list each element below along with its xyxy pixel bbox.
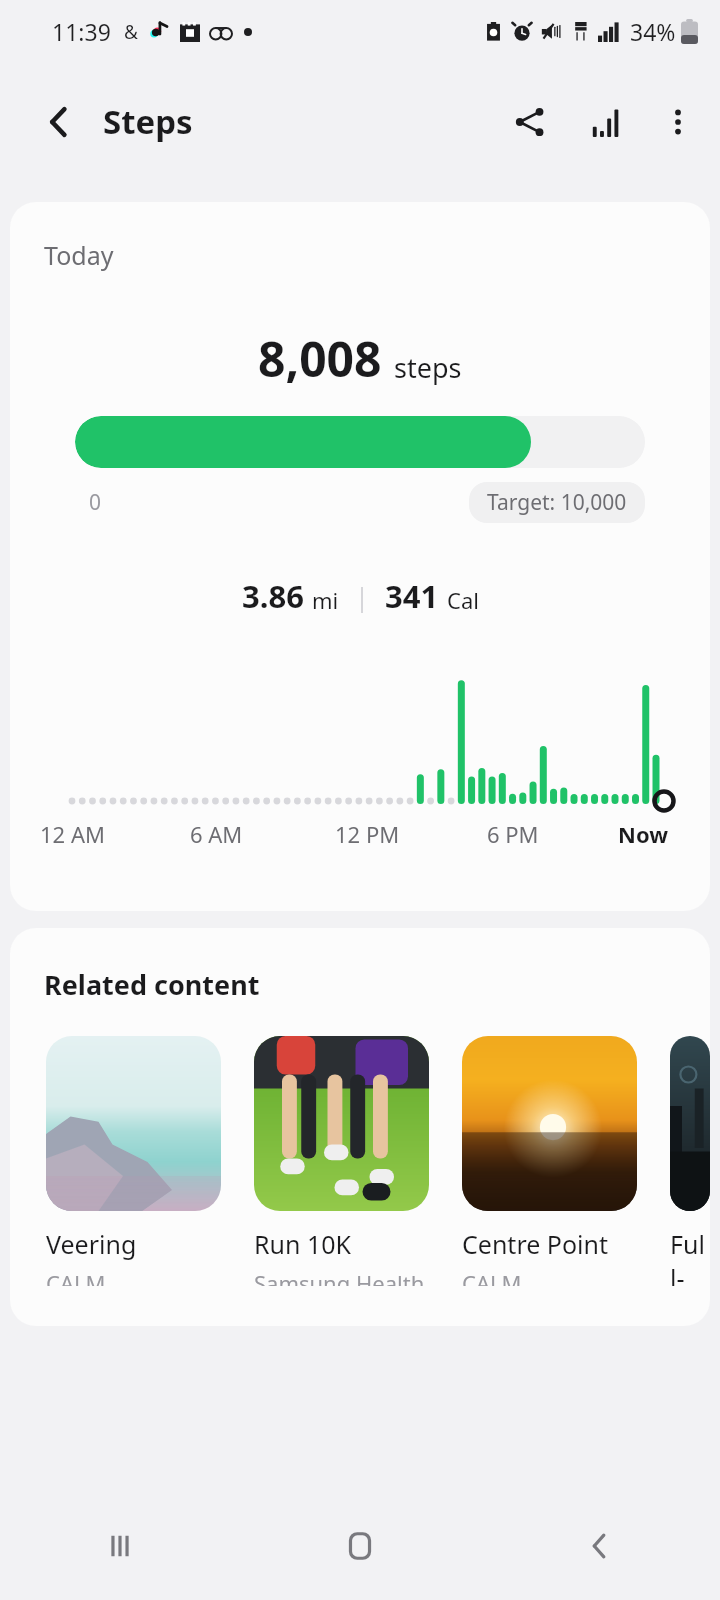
button[interactable]: History chart — [574, 90, 638, 154]
staticText: 8,008 — [258, 326, 382, 391]
staticText: Samsung Health — [254, 1268, 425, 1286]
staticText: Related content — [44, 966, 260, 1003]
staticText: 12 PM — [335, 819, 400, 849]
staticText: 11:39 — [52, 16, 111, 47]
staticText: Veering — [46, 1227, 137, 1261]
staticText: Full- Burn — [670, 1227, 710, 1286]
button[interactable]: More options — [646, 90, 710, 154]
staticText: 34% — [630, 16, 676, 47]
button[interactable]: Share — [498, 90, 562, 154]
button[interactable]: Full- Burn — [670, 1036, 710, 1286]
staticText: 3.86 — [242, 575, 304, 617]
staticText: Now — [618, 819, 669, 849]
staticText: Cal — [447, 585, 479, 615]
staticText: 0 — [89, 488, 102, 517]
staticText: Run 10K — [254, 1227, 352, 1261]
staticText: mi — [312, 585, 339, 615]
staticText: 12 AM — [40, 819, 105, 849]
button[interactable]: Centre Point — [462, 1036, 637, 1286]
staticText: & — [124, 19, 138, 45]
button[interactable]: Recent apps — [0, 1492, 240, 1600]
staticText: 6 PM — [487, 819, 539, 849]
staticText: Today — [44, 238, 114, 272]
staticText: CALM — [46, 1268, 106, 1286]
button[interactable]: Home — [240, 1492, 480, 1600]
button[interactable]: Run 10K — [254, 1036, 429, 1286]
staticText: steps — [394, 349, 462, 386]
staticText: Centre Point — [462, 1227, 608, 1261]
button[interactable]: Back — [28, 91, 90, 153]
button[interactable]: Veering — [46, 1036, 221, 1286]
button[interactable]: Back — [480, 1492, 720, 1600]
button[interactable]: Target: 10,000 — [469, 482, 645, 523]
staticText: 6 AM — [190, 819, 243, 849]
staticText: CALM — [462, 1268, 522, 1286]
staticText: Steps — [103, 99, 193, 144]
staticText: 341 — [385, 575, 439, 617]
staticText: Target: 10,000 — [487, 488, 627, 517]
button[interactable]: Today — [10, 202, 710, 911]
